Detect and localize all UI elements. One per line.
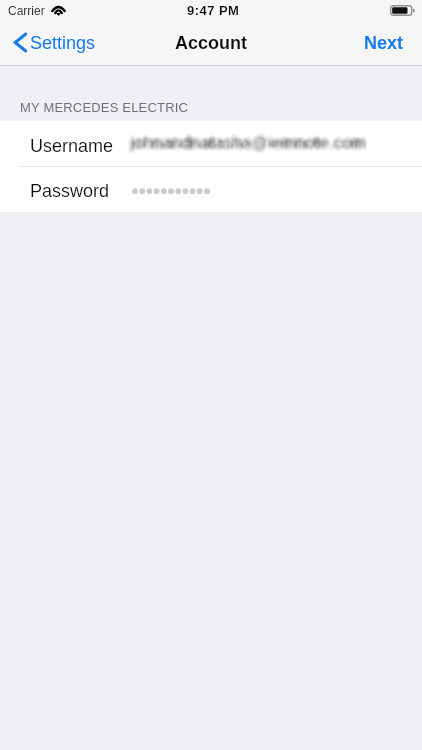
staticText: johnandnatasha@iemnote.com <box>133 135 369 154</box>
staticText: johnandnatasha@iemnote.com <box>131 134 367 153</box>
staticText: johnandnatasha@iemnote.com <box>131 130 367 149</box>
staticText: johnandnatasha@iemnote.com <box>129 136 365 155</box>
staticText: johnandnatasha@iemnote.com <box>131 137 367 156</box>
staticText: Username <box>30 136 114 156</box>
staticText: johnandnatasha@iemnote.com <box>129 135 365 154</box>
staticText: johnandnatasha@iemnote.com <box>132 133 368 152</box>
staticText: Settings <box>30 33 96 53</box>
staticText: johnandnatasha@iemnote.com <box>129 130 365 149</box>
staticText: johnandnatasha@iemnote.com <box>128 133 364 152</box>
staticText: johnandnatasha@iemnote.com <box>130 135 366 154</box>
staticText: johnandnatasha@iemnote.com <box>127 136 363 155</box>
staticText: johnandnatasha@iemnote.com <box>132 136 368 155</box>
staticText: johnandnatasha@iemnote.com <box>130 137 366 156</box>
staticText: johnandnatasha@iemnote.com <box>129 135 365 154</box>
staticText: johnandnatasha@iemnote.com <box>132 132 368 151</box>
staticText: johnandnatasha@iemnote.com <box>132 130 368 149</box>
staticText: johnandnatasha@iemnote.com <box>133 135 369 154</box>
staticText: johnandnatasha@iemnote.com <box>128 134 364 153</box>
staticText: johnandnatasha@iemnote.com <box>129 137 365 156</box>
staticText: johnandnatasha@iemnote.com <box>131 130 367 149</box>
staticText: johnandnatasha@iemnote.com <box>132 137 368 156</box>
staticText: johnandnatasha@iemnote.com <box>133 136 369 155</box>
staticText: johnandnatasha@iemnote.com <box>128 132 364 151</box>
staticText: johnandnatasha@iemnote.com <box>130 132 366 151</box>
staticText: johnandnatasha@iemnote.com <box>129 133 365 152</box>
staticText: johnandnatasha@iemnote.com <box>134 132 370 151</box>
staticText: johnandnatasha@iemnote.com <box>132 135 368 154</box>
staticText: johnandnatasha@iemnote.com <box>132 133 368 152</box>
staticText: johnandnatasha@iemnote.com <box>132 135 368 154</box>
staticText: johnandnatasha@iemnote.com <box>132 137 368 156</box>
staticText: johnandnatasha@iemnote.com <box>132 131 368 150</box>
staticText: johnandnatasha@iemnote.com <box>127 130 363 149</box>
staticText: johnandnatasha@iemnote.com <box>130 132 366 151</box>
staticText: johnandnatasha@iemnote.com <box>127 131 363 150</box>
staticText: johnandnatasha@iemnote.com <box>129 137 365 156</box>
staticText: johnandnatasha@iemnote.com <box>126 132 362 151</box>
staticText: johnandnatasha@iemnote.com <box>128 133 364 152</box>
staticText: johnandnatasha@iemnote.com <box>127 135 363 154</box>
staticText: johnandnatasha@iemnote.com <box>126 133 362 152</box>
staticText: johnandnatasha@iemnote.com <box>130 137 366 156</box>
staticText: johnandnatasha@iemnote.com <box>131 132 367 151</box>
staticText: Carrier <box>8 4 45 17</box>
staticText: johnandnatasha@iemnote.com <box>130 135 366 154</box>
staticText: johnandnatasha@iemnote.com <box>130 137 366 156</box>
staticText: johnandnatasha@iemnote.com <box>134 134 370 153</box>
staticText: johnandnatasha@iemnote.com <box>129 131 365 150</box>
staticText: johnandnatasha@iemnote.com <box>127 134 363 153</box>
staticText: johnandnatasha@iemnote.com <box>134 133 370 152</box>
staticText: johnandnatasha@iemnote.com <box>128 131 364 150</box>
staticText: johnandnatasha@iemnote.com <box>133 133 369 152</box>
staticText: johnandnatasha@iemnote.com <box>131 136 367 155</box>
staticText: johnandnatasha@iemnote.com <box>131 137 367 156</box>
staticText: johnandnatasha@iemnote.com <box>131 129 367 148</box>
staticText: johnandnatasha@iemnote.com <box>127 131 363 150</box>
staticText: johnandnatasha@iemnote.com <box>132 135 368 154</box>
button[interactable]: Back <box>0 32 104 53</box>
staticText: johnandnatasha@iemnote.com <box>131 134 367 153</box>
staticText: johnandnatasha@iemnote.com <box>127 134 363 153</box>
staticText: johnandnatasha@iemnote.com <box>131 133 367 152</box>
staticText: johnandnatasha@iemnote.com <box>129 134 365 153</box>
staticText: johnandnatasha@iemnote.com <box>130 130 366 149</box>
staticText: johnandnatasha@iemnote.com <box>131 133 367 152</box>
staticText: johnandnatasha@iemnote.com <box>128 130 364 149</box>
staticText: johnandnatasha@iemnote.com <box>133 133 369 152</box>
staticText: johnandnatasha@iemnote.com <box>128 131 364 150</box>
staticText: johnandnatasha@iemnote.com <box>129 137 365 156</box>
staticText: johnandnatasha@iemnote.com <box>134 132 370 151</box>
staticText: johnandnatasha@iemnote.com <box>126 132 362 151</box>
staticText: johnandnatasha@iemnote.com <box>132 134 368 153</box>
staticText: johnandnatasha@iemnote.com <box>130 136 366 155</box>
staticText: johnandnatasha@iemnote.com <box>130 129 366 148</box>
staticText: johnandnatasha@iemnote.com <box>132 131 368 150</box>
button[interactable]: Next <box>342 23 422 63</box>
staticText: johnandnatasha@iemnote.com <box>128 133 364 152</box>
staticText: johnandnatasha@iemnote.com <box>130 130 366 149</box>
button[interactable]: Password <box>0 167 422 212</box>
staticText: johnandnatasha@iemnote.com <box>133 136 369 155</box>
staticText: johnandnatasha@iemnote.com <box>128 130 364 149</box>
staticText: johnandnatasha@iemnote.com <box>134 134 370 153</box>
staticText: Account <box>175 33 247 53</box>
button[interactable]: Username <box>0 121 422 166</box>
staticText: johnandnatasha@iemnote.com <box>132 131 368 150</box>
staticText: johnandnatasha@iemnote.com <box>128 136 364 155</box>
staticText: johnandnatasha@iemnote.com <box>127 136 363 155</box>
staticText: johnandnatasha@iemnote.com <box>133 131 369 150</box>
staticText: johnandnatasha@iemnote.com <box>134 133 370 152</box>
staticText: johnandnatasha@iemnote.com <box>133 132 369 151</box>
staticText: johnandnatasha@iemnote.com <box>127 131 363 150</box>
staticText: johnandnatasha@iemnote.com <box>130 131 366 150</box>
staticText: johnandnatasha@iemnote.com <box>133 132 369 151</box>
staticText: johnandnatasha@iemnote.com <box>129 130 365 149</box>
staticText: johnandnatasha@iemnote.com <box>131 131 367 150</box>
staticText: johnandnatasha@iemnote.com <box>129 136 365 155</box>
staticText: johnandnatasha@iemnote.com <box>134 135 370 154</box>
staticText: johnandnatasha@iemnote.com <box>133 131 369 150</box>
staticText: johnandnatasha@iemnote.com <box>133 134 369 153</box>
staticText: johnandnatasha@iemnote.com <box>131 134 367 153</box>
staticText: johnandnatasha@iemnote.com <box>132 136 368 155</box>
